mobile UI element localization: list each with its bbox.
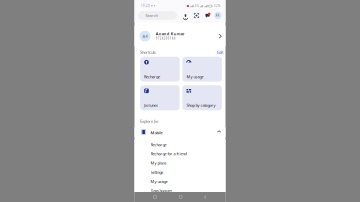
staticText: Recharge — [150, 142, 166, 147]
staticText: My usage — [186, 74, 203, 79]
staticText: Data booster — [150, 188, 172, 193]
button[interactable]: Notifications — [205, 13, 210, 18]
staticText: Search — [145, 13, 157, 18]
staticText: Mobile — [150, 130, 162, 135]
staticText: Explore Jio — [140, 119, 158, 124]
staticText: AK — [142, 33, 147, 39]
button[interactable]: Shop by category — [182, 85, 222, 110]
staticText: My plans — [150, 160, 166, 166]
staticText: AK — [216, 14, 220, 17]
button[interactable]: Recent apps — [153, 196, 156, 198]
button[interactable]: Google Lens — [194, 13, 199, 18]
button[interactable]: Data booster — [134, 186, 225, 195]
button[interactable]: Voice search — [183, 13, 188, 18]
button[interactable]: My usage — [182, 57, 222, 82]
staticText: 10:24 — [141, 4, 150, 7]
button[interactable]: Mobile — [134, 127, 225, 137]
button[interactable]: JioTunes — [140, 85, 180, 110]
button[interactable]: Account — [214, 12, 221, 19]
button[interactable]: Recharge — [134, 140, 225, 149]
staticText: JioTunes — [144, 103, 158, 108]
staticText: 9724200144 — [156, 37, 176, 40]
staticText: Recharge — [144, 74, 160, 79]
button[interactable]: Search — [138, 11, 177, 20]
button[interactable]: Recharge for a friend — [134, 149, 225, 158]
button[interactable]: AK — [134, 25, 225, 46]
staticText: Edit — [217, 50, 223, 55]
button[interactable]: Settings — [134, 168, 225, 177]
staticText: Shortcuts — [140, 50, 156, 55]
button[interactable]: Back — [204, 195, 206, 199]
button[interactable]: Recharge — [140, 57, 180, 82]
staticText: 52% — [214, 4, 220, 8]
staticText: Recharge for a friend — [150, 151, 186, 156]
staticText: Settings — [150, 169, 163, 175]
staticText: Shop by category — [186, 103, 215, 108]
button[interactable]: My usage — [134, 177, 225, 186]
staticText: 4G — [195, 4, 199, 8]
button[interactable]: Home — [179, 195, 182, 198]
staticText: My usage — [150, 179, 167, 184]
button[interactable]: My plans — [134, 158, 225, 168]
staticText: Anand Kumar — [156, 31, 185, 36]
button[interactable]: Edit — [217, 50, 223, 55]
